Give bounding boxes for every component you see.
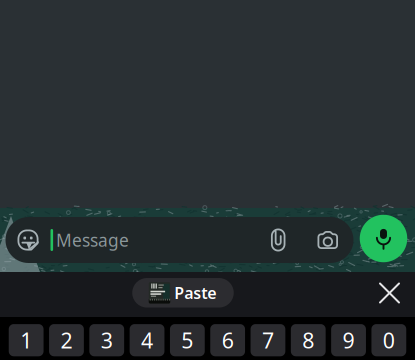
staticText: 9 [342,326,354,354]
staticText: Paste [174,282,216,303]
staticText: 1 [20,326,32,354]
staticText: 2 [60,326,72,354]
button[interactable]: 9 [331,324,366,356]
staticText: Message [56,228,129,251]
button[interactable]: 2 [49,324,84,356]
staticText: 6 [222,326,234,354]
button[interactable]: 7 [250,324,285,356]
button[interactable]: 0 [371,324,406,356]
button[interactable]: 3 [89,324,124,356]
button[interactable]: Attach [254,217,302,263]
staticText: 3 [101,326,113,354]
button[interactable]: Camera [302,217,353,263]
button[interactable]: 6 [210,324,245,356]
button[interactable]: 5 [170,324,205,356]
button[interactable]: 1 [9,324,43,356]
button[interactable]: Dismiss [371,275,407,311]
staticText: 0 [383,326,395,354]
button[interactable]: Stickers [5,217,50,263]
button[interactable]: 8 [291,324,326,356]
button[interactable]: Paste [132,278,234,308]
staticText: 5 [181,326,193,354]
button[interactable]: Voice message [360,215,407,262]
button[interactable]: 4 [130,324,164,356]
staticText: 7 [262,326,274,354]
staticText: 4 [141,326,153,354]
staticText: 8 [302,326,314,354]
